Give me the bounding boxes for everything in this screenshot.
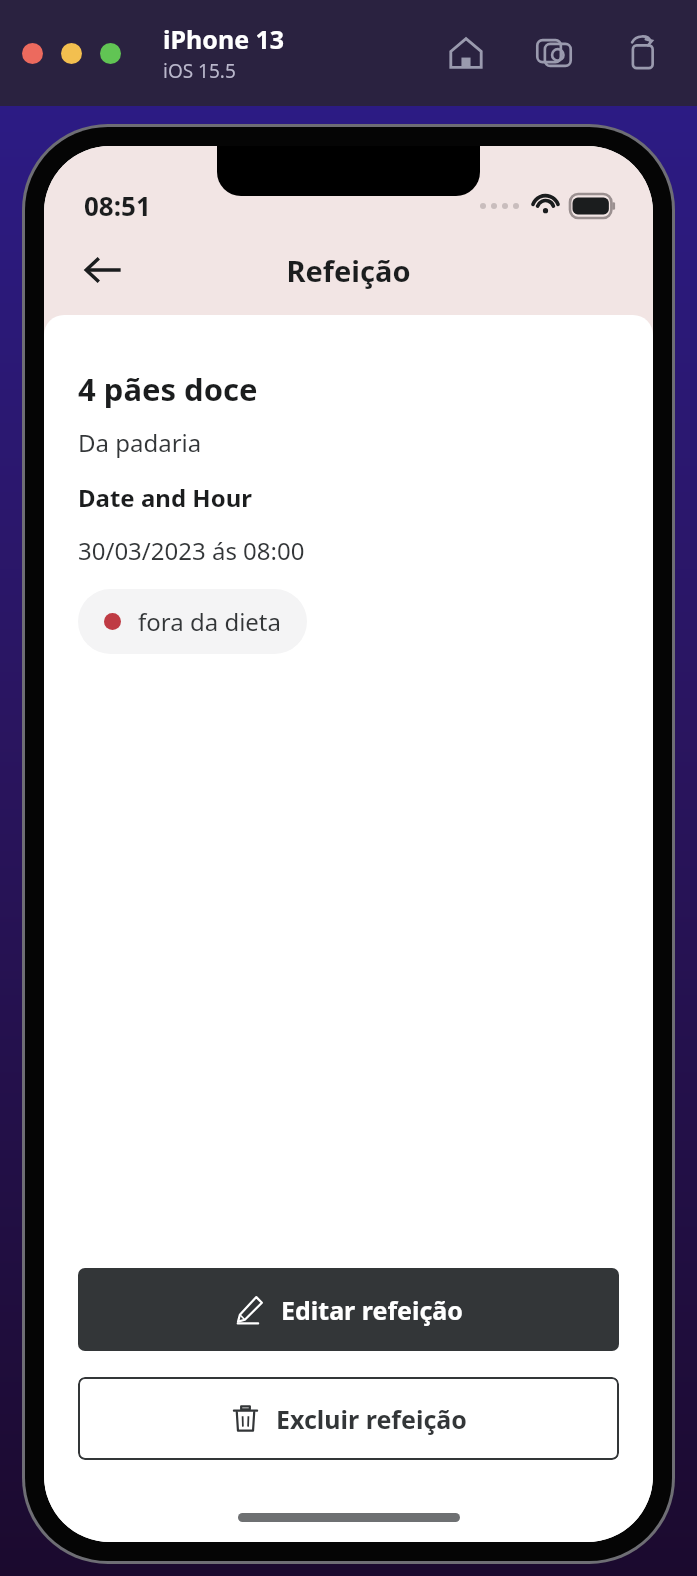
- button[interactable]: [22, 43, 43, 64]
- staticText: 4 pães doce: [78, 368, 258, 410]
- button[interactable]: Screenshot: [527, 26, 581, 80]
- button[interactable]: Excluir refeição: [78, 1377, 619, 1460]
- button[interactable]: Home: [439, 26, 493, 80]
- staticText: 30/03/2023 ás 08:00: [78, 534, 305, 567]
- staticText: fora da dieta: [138, 605, 281, 638]
- staticText: 08:51: [84, 188, 151, 223]
- button[interactable]: fora da dieta: [78, 589, 307, 654]
- button[interactable]: [61, 43, 82, 64]
- button[interactable]: [100, 43, 121, 64]
- button[interactable]: Rotate: [615, 26, 669, 80]
- staticText: iOS 15.5: [163, 58, 236, 84]
- staticText: Editar refeição: [281, 1293, 463, 1327]
- staticText: Excluir refeição: [276, 1402, 467, 1436]
- staticText: Refeição: [44, 251, 653, 290]
- staticText: Date and Hour: [78, 481, 252, 514]
- button[interactable]: Editar refeição: [78, 1268, 619, 1351]
- staticText: Da padaria: [78, 426, 202, 459]
- staticText: iPhone 13: [163, 22, 285, 56]
- button[interactable]: Back: [72, 239, 134, 301]
